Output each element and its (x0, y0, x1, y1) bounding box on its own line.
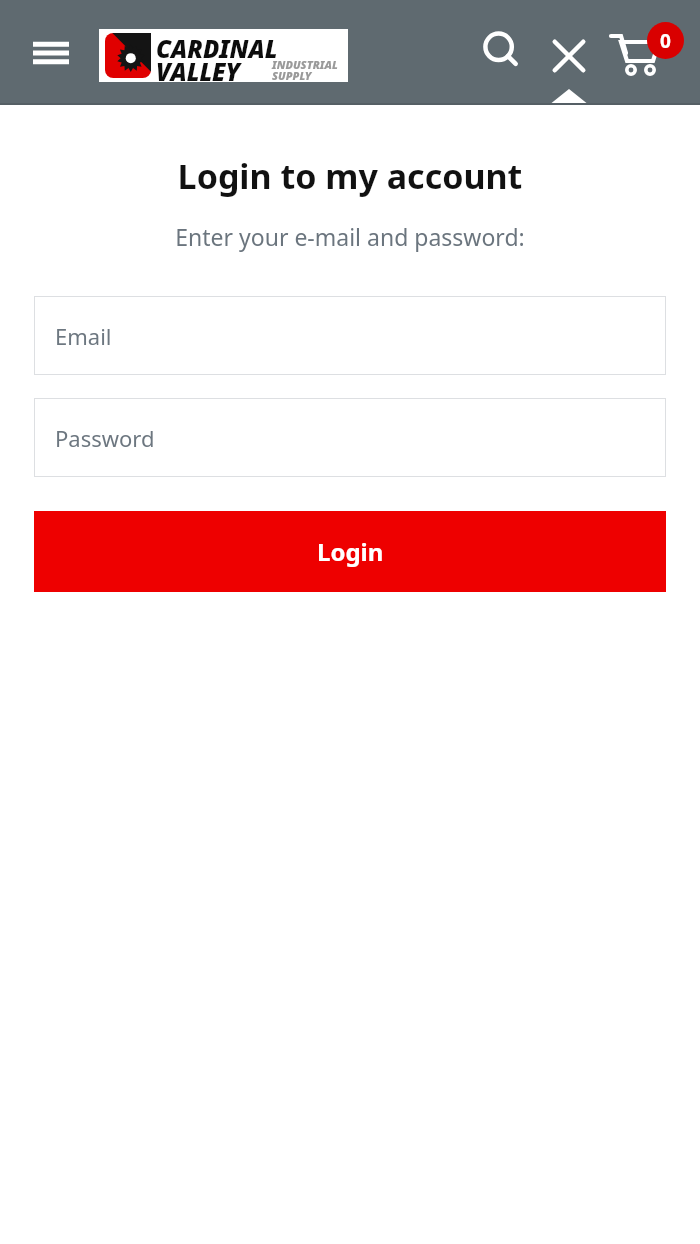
button[interactable]: Menu (22, 33, 80, 73)
staticText: Login (317, 535, 384, 568)
staticText: VALLEY (156, 55, 241, 88)
staticText: CARDINAL (156, 32, 278, 65)
staticText: Login to my account (0, 153, 700, 199)
staticText: Password (55, 423, 155, 453)
staticText: INDUSTRIAL (272, 57, 338, 72)
staticText: Email (55, 321, 112, 351)
staticText: SUPPLY (272, 68, 312, 83)
button[interactable]: Login (34, 511, 666, 592)
button[interactable]: Email (34, 296, 666, 375)
button[interactable]: Cart, 0 items (607, 20, 683, 82)
staticText: Enter your e-mail and password: (0, 221, 700, 252)
button[interactable]: Password (34, 398, 666, 477)
staticText: 0 (660, 28, 671, 54)
button[interactable]: Search (475, 24, 527, 76)
button[interactable]: Close (543, 30, 595, 82)
button[interactable]: Cardinal Valley Industrial Supply home (99, 29, 348, 82)
